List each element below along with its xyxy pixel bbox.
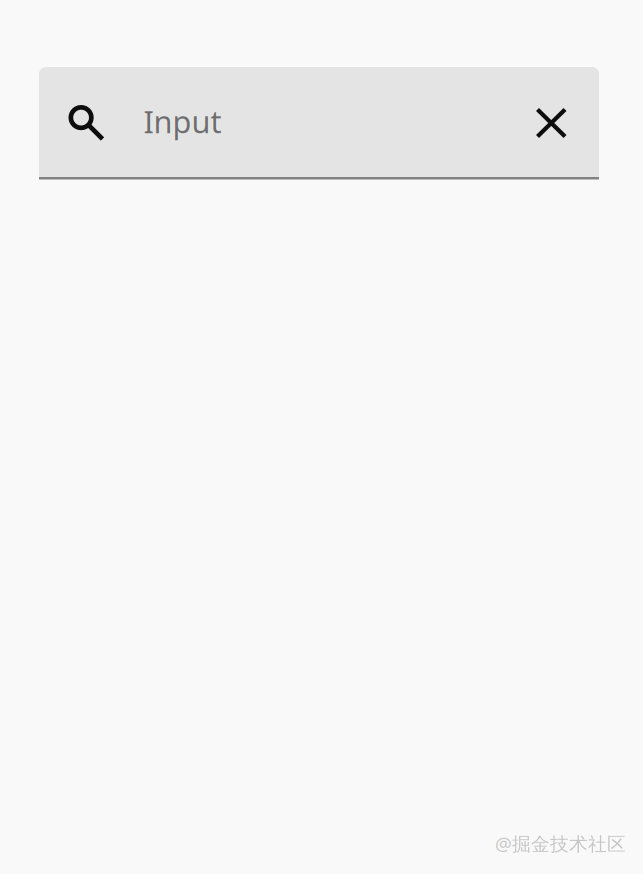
button[interactable]: Input: [39, 67, 599, 179]
button[interactable]: Clear text: [521, 93, 581, 152]
staticText: @掘金技术社区: [495, 831, 626, 856]
staticText: Input: [144, 101, 222, 142]
button[interactable]: Search: [52, 89, 120, 157]
